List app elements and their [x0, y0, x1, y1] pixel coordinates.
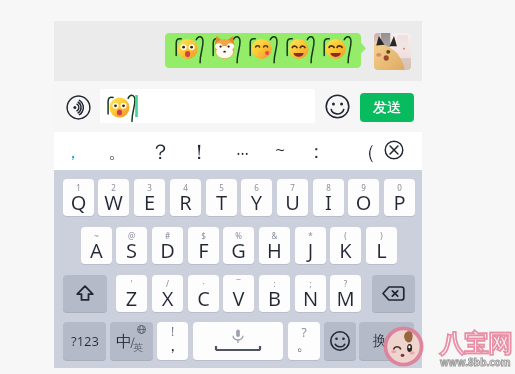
button[interactable]: @: [116, 227, 147, 264]
button[interactable]: 4: [170, 179, 201, 216]
button[interactable]: Voice input: [66, 95, 91, 120]
button[interactable]: 换行: [359, 322, 414, 360]
staticText: 中: [116, 332, 132, 352]
button[interactable]: (: [330, 227, 361, 264]
staticText: www.8bb.com: [440, 355, 511, 369]
staticText: C: [188, 285, 219, 311]
staticText: 。: [108, 141, 126, 164]
staticText: 八宝网: [440, 329, 512, 359]
staticText: 6: [241, 182, 272, 193]
button[interactable]: ?123: [63, 322, 106, 360]
staticText: 3: [134, 182, 165, 193]
button[interactable]: 3: [134, 179, 165, 216]
staticText: 换行: [373, 332, 401, 350]
button[interactable]: ~: [260, 131, 300, 169]
staticText: ：: [307, 140, 326, 164]
button[interactable]: Delete: [384, 140, 404, 160]
button[interactable]: （: [346, 131, 386, 169]
button[interactable]: Space: [193, 322, 283, 360]
staticText: T: [206, 189, 237, 215]
button[interactable]: 9: [348, 179, 379, 216]
staticText: 1: [63, 182, 94, 193]
staticText: ？: [150, 139, 171, 165]
staticText: Q: [63, 189, 94, 215]
staticText: N: [295, 285, 326, 311]
staticText: ~: [81, 230, 112, 241]
staticText: K: [330, 237, 361, 263]
staticText: （: [356, 140, 376, 165]
button[interactable]: Backspace: [372, 275, 415, 312]
button[interactable]: [100, 89, 315, 123]
button[interactable]: 。: [97, 131, 137, 169]
staticText: 8: [313, 182, 344, 193]
staticText: I: [313, 189, 344, 215]
button[interactable]: ;: [295, 275, 326, 312]
staticText: Z: [116, 285, 147, 311]
button[interactable]: 0: [384, 179, 415, 216]
button[interactable]: $: [188, 227, 219, 264]
staticText: L: [366, 237, 397, 263]
staticText: !: [157, 323, 188, 338]
staticText: R: [170, 189, 201, 215]
button[interactable]: ？: [140, 131, 180, 169]
button[interactable]: /: [152, 275, 183, 312]
button[interactable]: ，: [53, 131, 93, 169]
staticText: D: [152, 237, 183, 263]
button[interactable]: [374, 33, 411, 70]
staticText: ): [366, 230, 397, 241]
button[interactable]: [165, 33, 366, 68]
staticText: X: [152, 285, 183, 311]
button[interactable]: Emoji keyboard: [324, 322, 356, 360]
button[interactable]: 7: [277, 179, 308, 216]
staticText: G: [223, 237, 254, 263]
staticText: O: [348, 189, 379, 215]
staticText: 9: [348, 182, 379, 193]
button[interactable]: :: [259, 275, 290, 312]
button[interactable]: 5: [206, 179, 237, 216]
button[interactable]: Emoji picker: [325, 94, 350, 119]
staticText: #: [152, 230, 183, 241]
button[interactable]: 发送: [360, 93, 414, 122]
button[interactable]: 2: [98, 179, 129, 216]
button[interactable]: *: [295, 227, 326, 264]
staticText: Y: [241, 189, 272, 215]
button[interactable]: …: [222, 131, 262, 169]
staticText: 2: [98, 182, 129, 193]
button[interactable]: ?: [288, 322, 320, 360]
staticText: ': [116, 278, 147, 289]
button[interactable]: !: [157, 322, 188, 360]
staticText: W: [98, 189, 129, 215]
button[interactable]: ~: [81, 227, 112, 264]
staticText: E: [134, 189, 165, 215]
button[interactable]: 中: [110, 322, 153, 360]
button[interactable]: ': [116, 275, 147, 312]
staticText: S: [116, 237, 147, 263]
staticText: ¯: [223, 278, 254, 289]
staticText: ~: [275, 138, 285, 161]
staticText: …: [236, 138, 249, 160]
button[interactable]: ！: [179, 131, 219, 169]
button[interactable]: %: [223, 227, 254, 264]
staticText: U: [277, 189, 308, 215]
button[interactable]: ): [366, 227, 397, 264]
button[interactable]: Shift: [63, 275, 107, 312]
button[interactable]: ：: [296, 131, 336, 169]
staticText: :: [259, 278, 290, 289]
staticText: ，: [157, 335, 188, 359]
button[interactable]: 6: [241, 179, 272, 216]
staticText: 5: [206, 182, 237, 193]
staticText: @: [116, 230, 147, 241]
staticText: 八宝网: [440, 329, 512, 359]
staticText: 7: [277, 182, 308, 193]
button[interactable]: 8: [313, 179, 344, 216]
staticText: A: [81, 237, 112, 263]
button[interactable]: ¯: [223, 275, 254, 312]
button[interactable]: &: [259, 227, 290, 264]
button[interactable]: #: [152, 227, 183, 264]
staticText: www.8bb.com: [440, 355, 511, 369]
staticText: ·: [188, 278, 219, 289]
staticText: ;: [295, 278, 326, 289]
button[interactable]: ·: [188, 275, 219, 312]
button[interactable]: ?: [330, 275, 361, 312]
button[interactable]: 1: [63, 179, 94, 216]
